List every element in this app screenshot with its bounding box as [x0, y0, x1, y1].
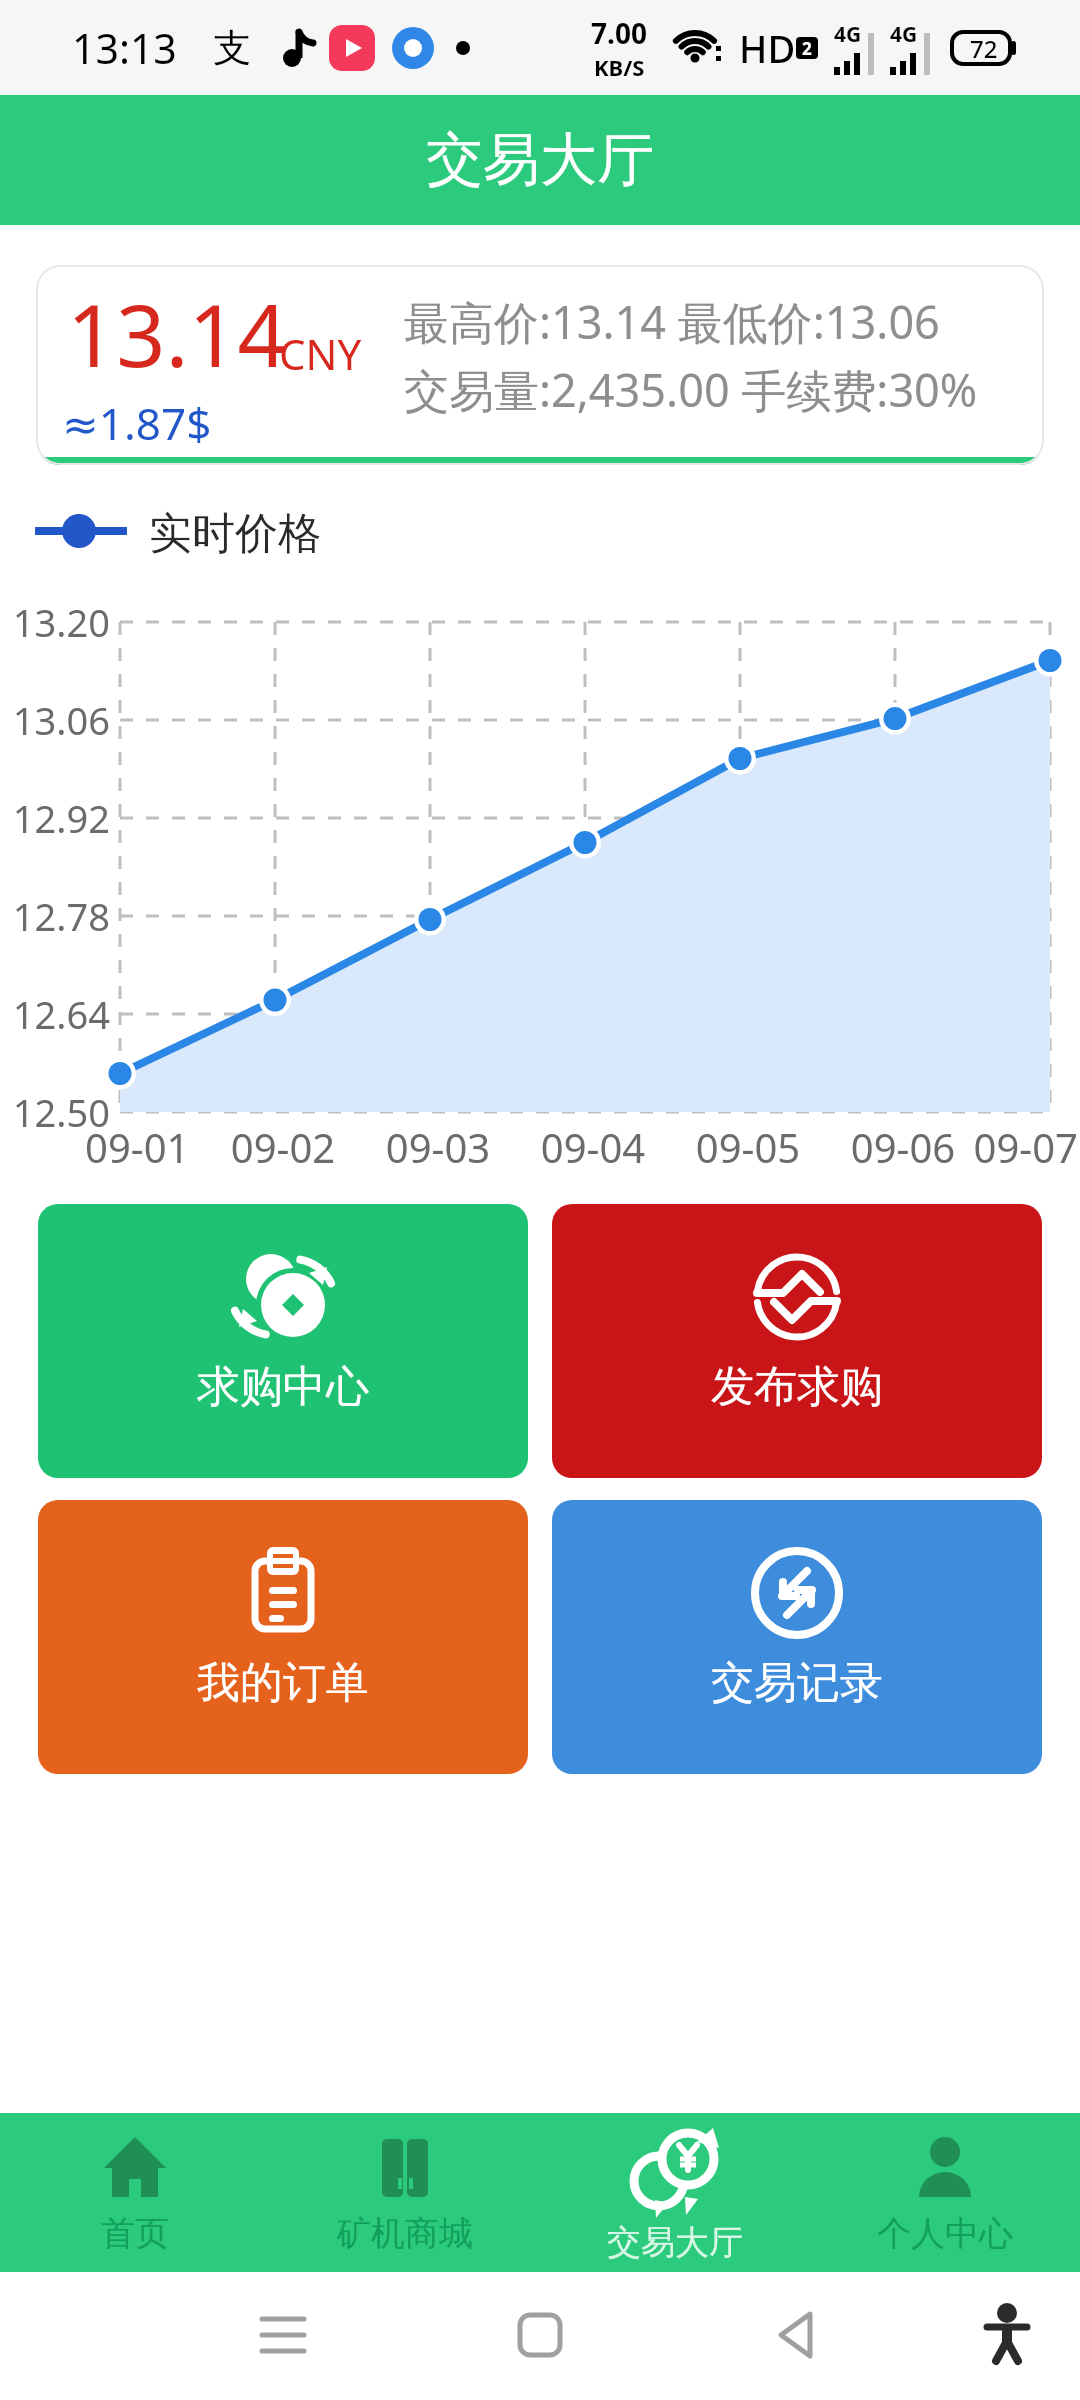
staticText: 09-06 [826, 1120, 980, 1174]
staticText: 13.20 [0, 596, 110, 648]
button[interactable]: 13.14 [36, 265, 1044, 465]
staticText: 12.64 [0, 988, 110, 1040]
staticText: 12.92 [0, 792, 110, 844]
button[interactable]: 矿机商城 [270, 2113, 540, 2272]
staticText: 矿机商城 [337, 2212, 473, 2255]
staticText: 交易大厅 [426, 124, 654, 196]
staticText: 4G [834, 20, 862, 49]
staticText: 交易记录 [711, 1656, 883, 1710]
staticText: 实时价格 [149, 507, 321, 555]
button[interactable]: 我的订单 [38, 1500, 528, 1774]
button[interactable]: 首页 [0, 2113, 270, 2272]
staticText: 13.06 [0, 694, 110, 746]
staticText: 7.00 [591, 14, 647, 52]
staticText: 12.50 [0, 1086, 110, 1138]
button[interactable]: 求购中心 [38, 1204, 528, 1478]
staticText: 12.78 [0, 890, 110, 942]
staticText: 最高价:13.14 最低价:13.06 [404, 291, 940, 352]
staticText: 09-01 [85, 1120, 239, 1174]
staticText: 求购中心 [197, 1360, 369, 1414]
staticText: 2 [802, 37, 812, 59]
staticText: 13:13 [72, 20, 177, 76]
staticText: 交易量:2,435.00 手续费:30% [404, 359, 978, 420]
staticText: 09-05 [671, 1120, 825, 1174]
staticText: 4G [890, 20, 918, 49]
button[interactable]: 交易记录 [552, 1500, 1042, 1774]
staticText: ≈1.87$ [62, 393, 212, 453]
button[interactable]: 交易大厅 [540, 2113, 810, 2272]
staticText: 个人中心 [877, 2212, 1013, 2255]
staticText: 我的订单 [197, 1656, 369, 1710]
staticText: 发布求购 [711, 1360, 883, 1414]
staticText: 交易大厅 [607, 2221, 743, 2264]
staticText: 09-02 [206, 1120, 360, 1174]
staticText: KB/S [594, 52, 645, 82]
staticText: CNY [279, 325, 362, 382]
staticText: 13.14 [67, 275, 287, 392]
staticText: 72 [970, 32, 998, 65]
staticText: HD [739, 22, 796, 74]
staticText: 09-07 [924, 1120, 1078, 1174]
staticText: 09-04 [516, 1120, 670, 1174]
button[interactable]: 发布求购 [552, 1204, 1042, 1478]
staticText: 支 [213, 24, 251, 72]
staticText: 首页 [101, 2212, 169, 2255]
staticText: 09-03 [361, 1120, 515, 1174]
button[interactable]: 个人中心 [810, 2113, 1080, 2272]
